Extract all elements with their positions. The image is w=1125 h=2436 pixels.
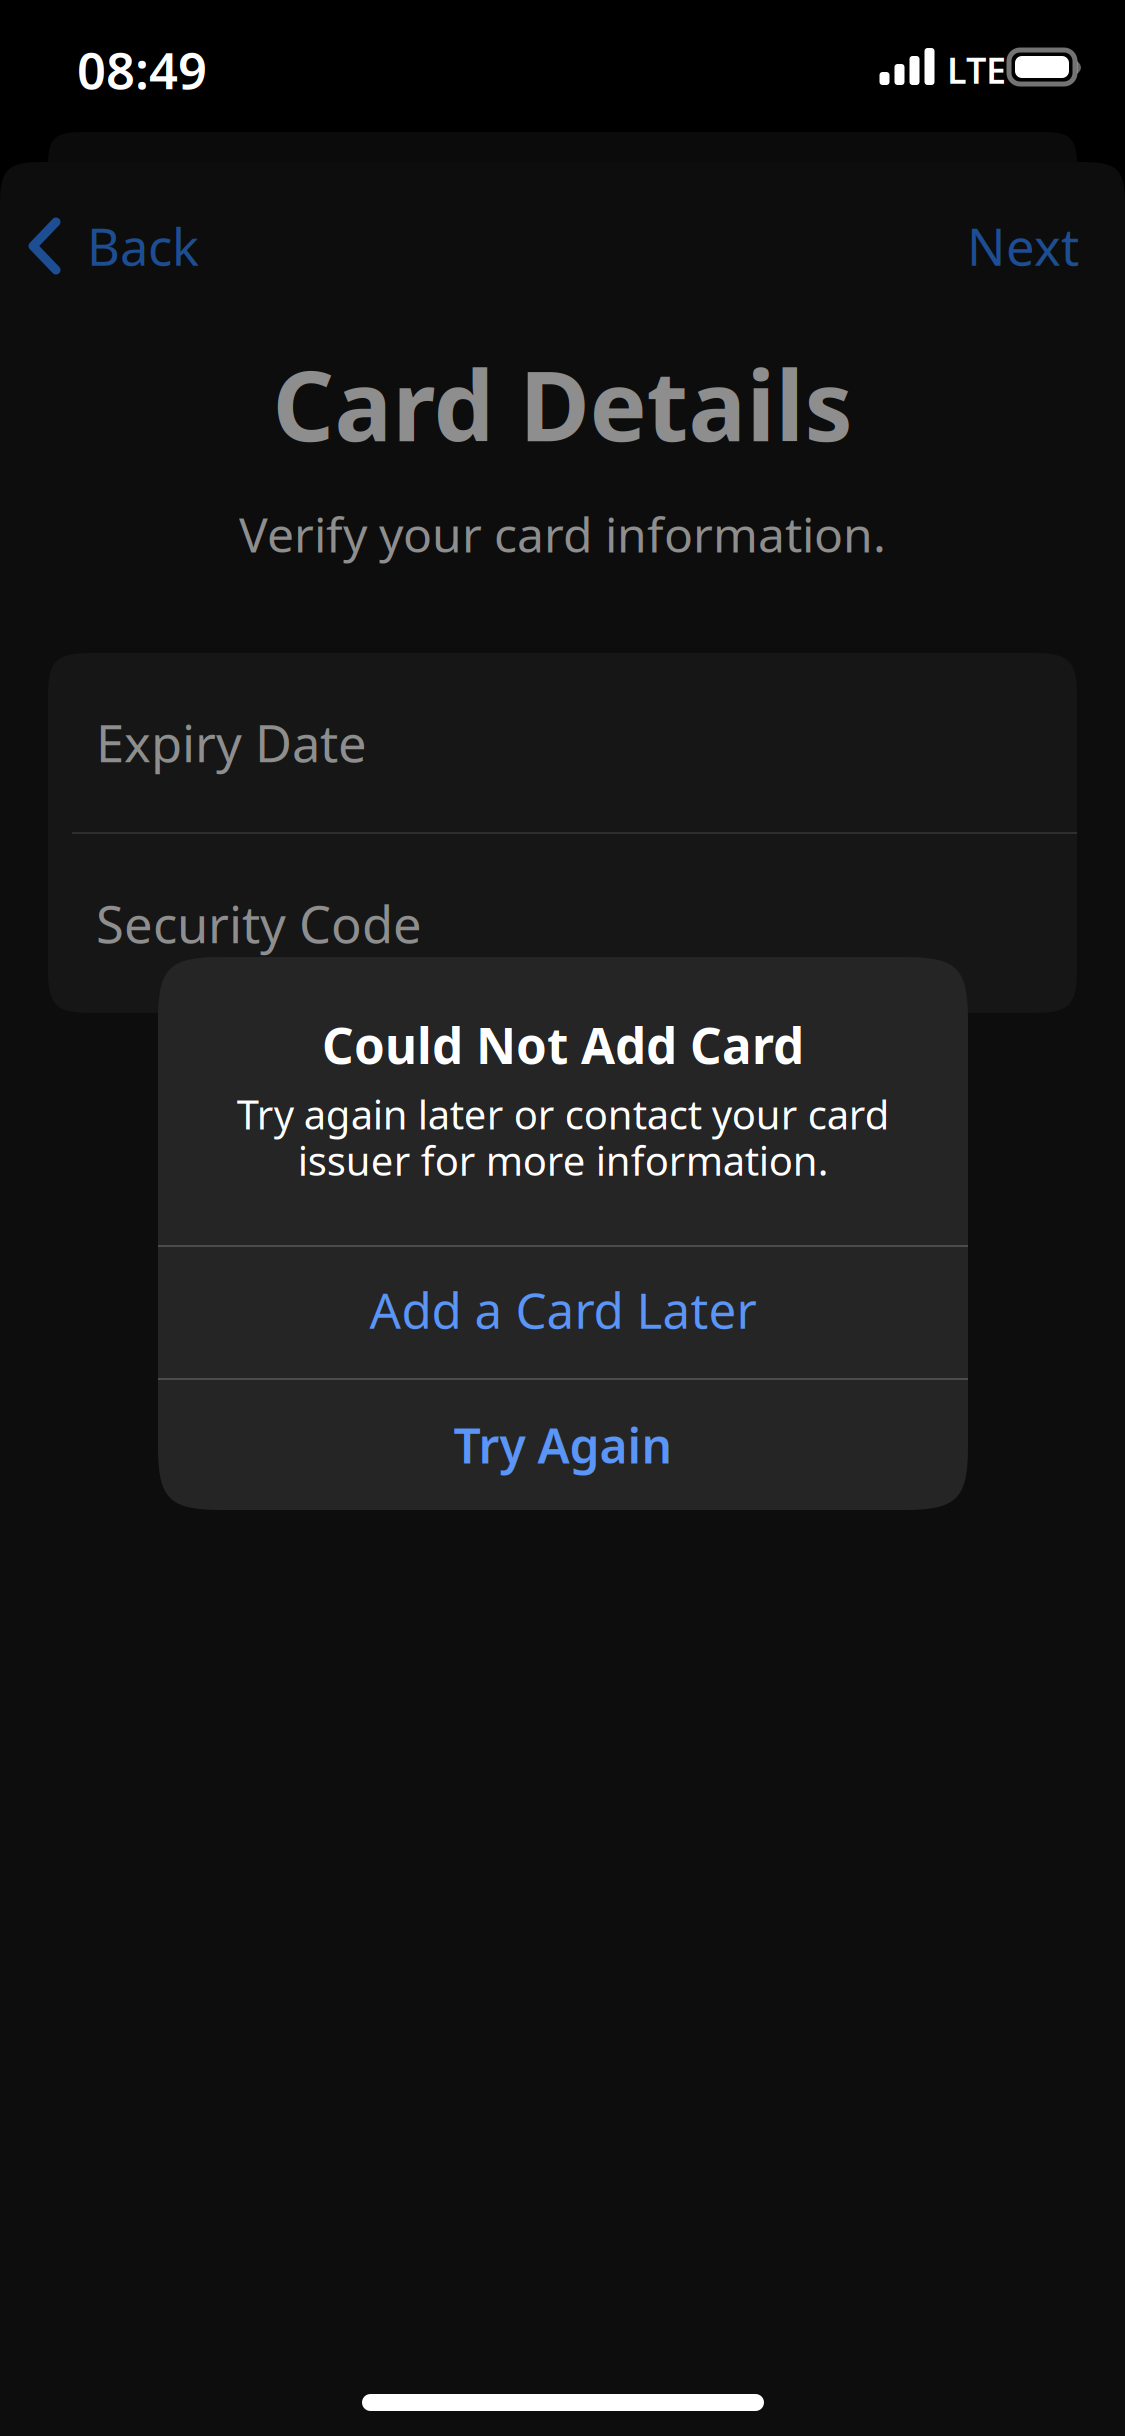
staticText: Back bbox=[87, 212, 199, 280]
staticText: Next bbox=[967, 212, 1079, 280]
staticText: Card Details bbox=[272, 340, 852, 468]
staticText: LTE bbox=[947, 46, 1006, 94]
staticText: Try Again bbox=[453, 1413, 672, 1477]
staticText: Add a Card Later bbox=[369, 1277, 756, 1342]
staticText: Try again later or contact your card iss… bbox=[236, 1087, 889, 1187]
staticText: Expiry Date bbox=[96, 709, 367, 776]
button[interactable]: Back bbox=[18, 186, 223, 306]
staticText: Could Not Add Card bbox=[322, 1012, 804, 1077]
button[interactable]: Security Code bbox=[48, 834, 1077, 1013]
staticText: 08:49 bbox=[77, 36, 207, 103]
button[interactable]: Try Again bbox=[158, 1380, 968, 1510]
button[interactable]: Next bbox=[939, 186, 1107, 306]
button[interactable]: Add a Card Later bbox=[158, 1247, 968, 1378]
button[interactable]: Expiry Date bbox=[48, 653, 1077, 832]
staticText: Verify your card information. bbox=[239, 502, 886, 566]
staticText: Security Code bbox=[96, 890, 422, 957]
